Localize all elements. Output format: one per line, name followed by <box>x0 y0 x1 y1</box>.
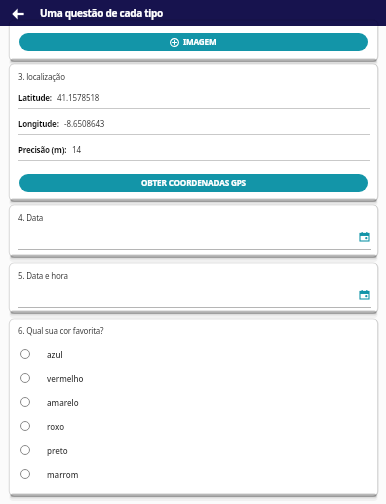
staticText: 5. Data e hora <box>18 270 68 281</box>
staticText: 14 <box>72 144 81 155</box>
staticText: Precisão (m): <box>18 144 67 155</box>
staticText: vermelho <box>47 373 84 384</box>
staticText: marrom <box>47 469 79 480</box>
staticText: amarelo <box>47 397 79 408</box>
staticText: -8.6508643 <box>64 118 105 129</box>
button[interactable]: vermelho <box>10 366 377 390</box>
button[interactable]: roxo <box>10 414 377 438</box>
button[interactable]: marrom <box>10 462 377 486</box>
staticText: preto <box>47 445 68 456</box>
button[interactable]: Back <box>7 3 28 24</box>
staticText: 41.1578518 <box>57 92 100 103</box>
button[interactable]: Pick date <box>357 229 371 243</box>
staticText: Longitude: <box>18 118 59 129</box>
button[interactable]: IMAGEM <box>19 33 368 51</box>
staticText: IMAGEM <box>183 36 217 47</box>
staticText: OBTER COORDENADAS GPS <box>141 177 246 188</box>
staticText: 4. Data <box>18 212 44 223</box>
staticText: Latitude: <box>18 92 52 103</box>
button[interactable]: amarelo <box>10 390 377 414</box>
staticText: azul <box>47 349 63 360</box>
staticText: 3. localização <box>18 71 65 82</box>
staticText: 6. Qual sua cor favorita? <box>18 325 104 336</box>
staticText: Uma questão de cada tipo <box>40 6 164 20</box>
button[interactable]: preto <box>10 438 377 462</box>
button[interactable]: azul <box>10 342 377 366</box>
button[interactable]: Pick date <box>357 287 371 301</box>
staticText: roxo <box>47 421 65 432</box>
button[interactable]: OBTER COORDENADAS GPS <box>19 174 368 192</box>
